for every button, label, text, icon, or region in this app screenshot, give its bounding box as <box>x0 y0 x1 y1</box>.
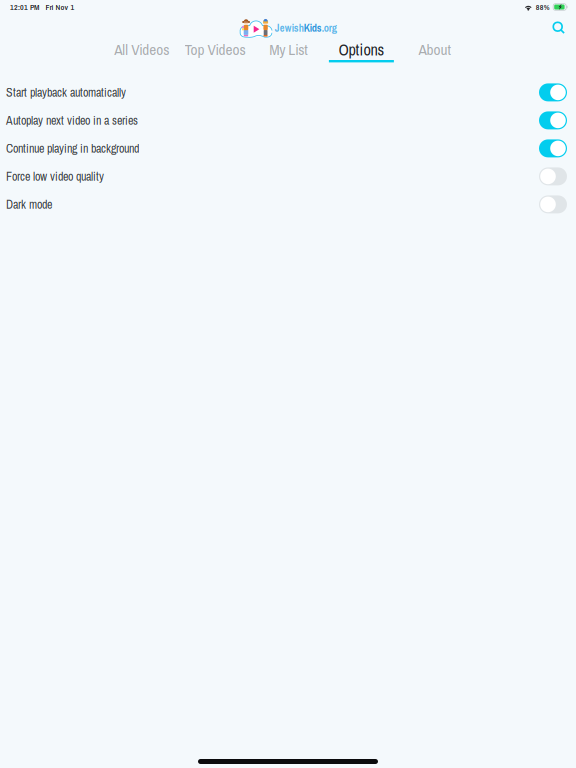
button[interactable]: Continue playing in background <box>0 134 576 162</box>
button[interactable]: Dark mode <box>0 190 576 218</box>
staticText: Fri Nov 1 <box>45 2 74 12</box>
staticText: Continue playing in background <box>6 140 139 156</box>
button[interactable]: Force low video quality <box>0 162 576 190</box>
staticText: Kids <box>304 21 322 35</box>
button[interactable]: All Videos <box>105 43 178 62</box>
staticText: Jewish <box>275 21 304 35</box>
staticText: Force low video quality <box>6 168 104 184</box>
button[interactable]: About <box>398 43 471 62</box>
button[interactable]: Autoplay next video in a series <box>0 106 576 134</box>
staticText: 88% <box>536 2 550 12</box>
staticText: 12:01 PM <box>10 2 39 12</box>
button[interactable]: Options <box>325 43 398 62</box>
button[interactable]: My List <box>252 43 325 62</box>
staticText: Top Videos <box>184 39 245 60</box>
button[interactable]: Top Videos <box>178 43 252 62</box>
staticText: Options <box>338 38 384 60</box>
staticText: Start playback automatically <box>6 84 126 100</box>
staticText: My List <box>269 39 307 60</box>
button[interactable]: Search <box>542 16 576 40</box>
staticText: Autoplay next video in a series <box>6 112 138 128</box>
staticText: Dark mode <box>6 196 52 212</box>
button[interactable]: Start playback automatically <box>0 78 576 106</box>
staticText: All Videos <box>114 39 169 60</box>
staticText: About <box>419 39 451 60</box>
staticText: .org <box>322 21 337 35</box>
